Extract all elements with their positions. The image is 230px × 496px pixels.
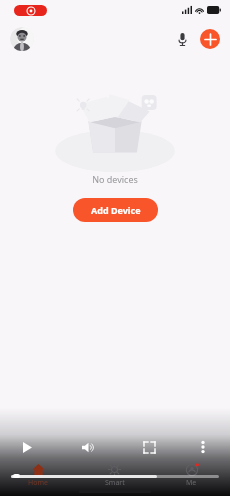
staticText: Me <box>186 478 197 488</box>
button[interactable]: Profile <box>10 27 34 51</box>
button[interactable]: Me <box>153 462 230 488</box>
staticText: No devices <box>92 173 138 185</box>
button[interactable]: More options <box>195 439 211 455</box>
button[interactable]: Fullscreen <box>141 439 157 455</box>
button[interactable]: Voice <box>170 27 194 51</box>
button[interactable]: Smart <box>76 462 153 488</box>
button[interactable]: Add Device <box>73 198 158 222</box>
button[interactable]: Volume <box>80 439 96 455</box>
button[interactable]: Home <box>0 462 76 488</box>
staticText: Add Device <box>91 204 141 216</box>
button[interactable]: Play <box>19 439 35 455</box>
staticText: Smart <box>105 478 125 488</box>
button[interactable]: Add <box>200 29 220 49</box>
staticText: Home <box>28 478 48 488</box>
